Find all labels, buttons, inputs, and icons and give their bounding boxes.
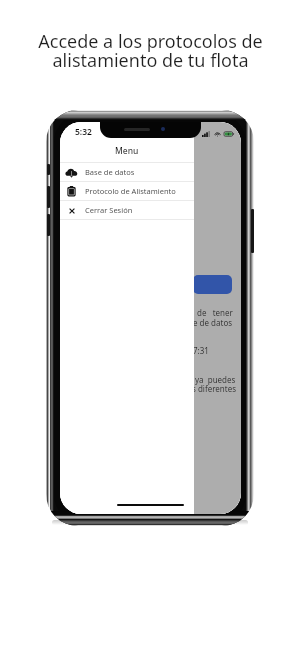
staticText: 7:31 [193, 345, 209, 356]
staticText: Protocolo de Alistamiento [85, 186, 176, 196]
button[interactable]: Base de datos [60, 163, 194, 181]
staticText: Cerrar Sesión [85, 205, 133, 215]
staticText: e de datos [193, 317, 233, 328]
staticText: Menu [115, 145, 139, 157]
staticText: Accede a los protocolos de alistamiento … [38, 29, 263, 72]
button[interactable] [193, 275, 232, 294]
button[interactable]: Cerrar Sesión [60, 201, 194, 219]
staticText: 5:32 [75, 126, 92, 138]
staticText: de tener [197, 307, 233, 318]
staticText: ya puedes [195, 374, 236, 385]
staticText: Base de datos [85, 167, 135, 177]
staticText: s diferentes [192, 383, 236, 394]
button[interactable]: Protocolo de Alistamiento [60, 182, 194, 200]
